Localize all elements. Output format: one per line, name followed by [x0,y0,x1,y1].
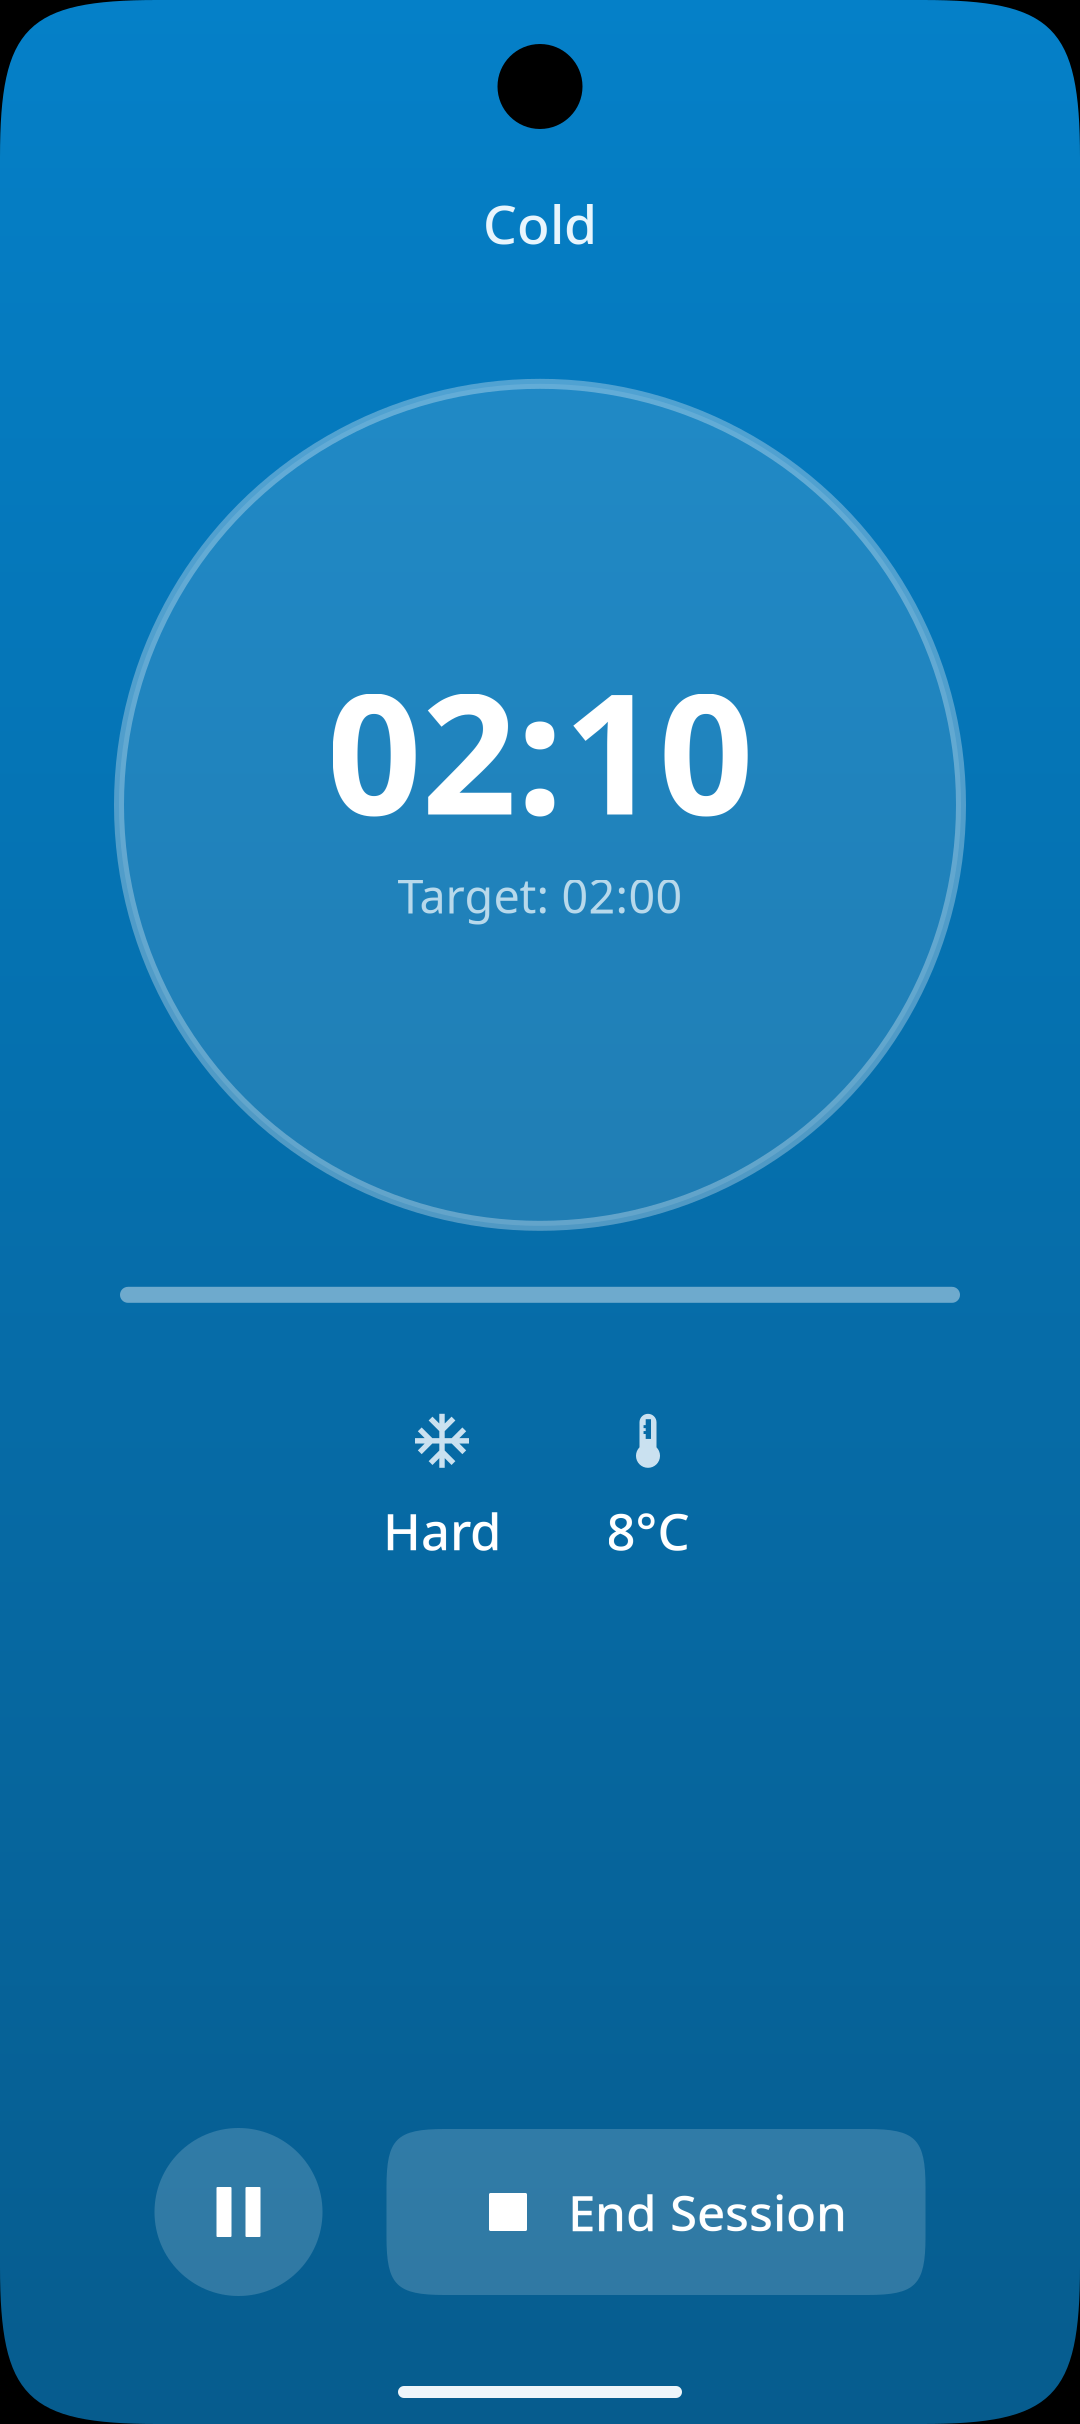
button[interactable]: Pause [154,2128,322,2296]
staticText: 8°C [606,1497,689,1564]
staticText: 02:10 [326,639,753,860]
staticText: Target: 02:00 [397,864,682,926]
staticText: Hard [383,1497,501,1564]
staticText: Cold [483,188,597,259]
button[interactable]: End Session [386,2129,925,2295]
staticText: End Session [568,2179,847,2245]
